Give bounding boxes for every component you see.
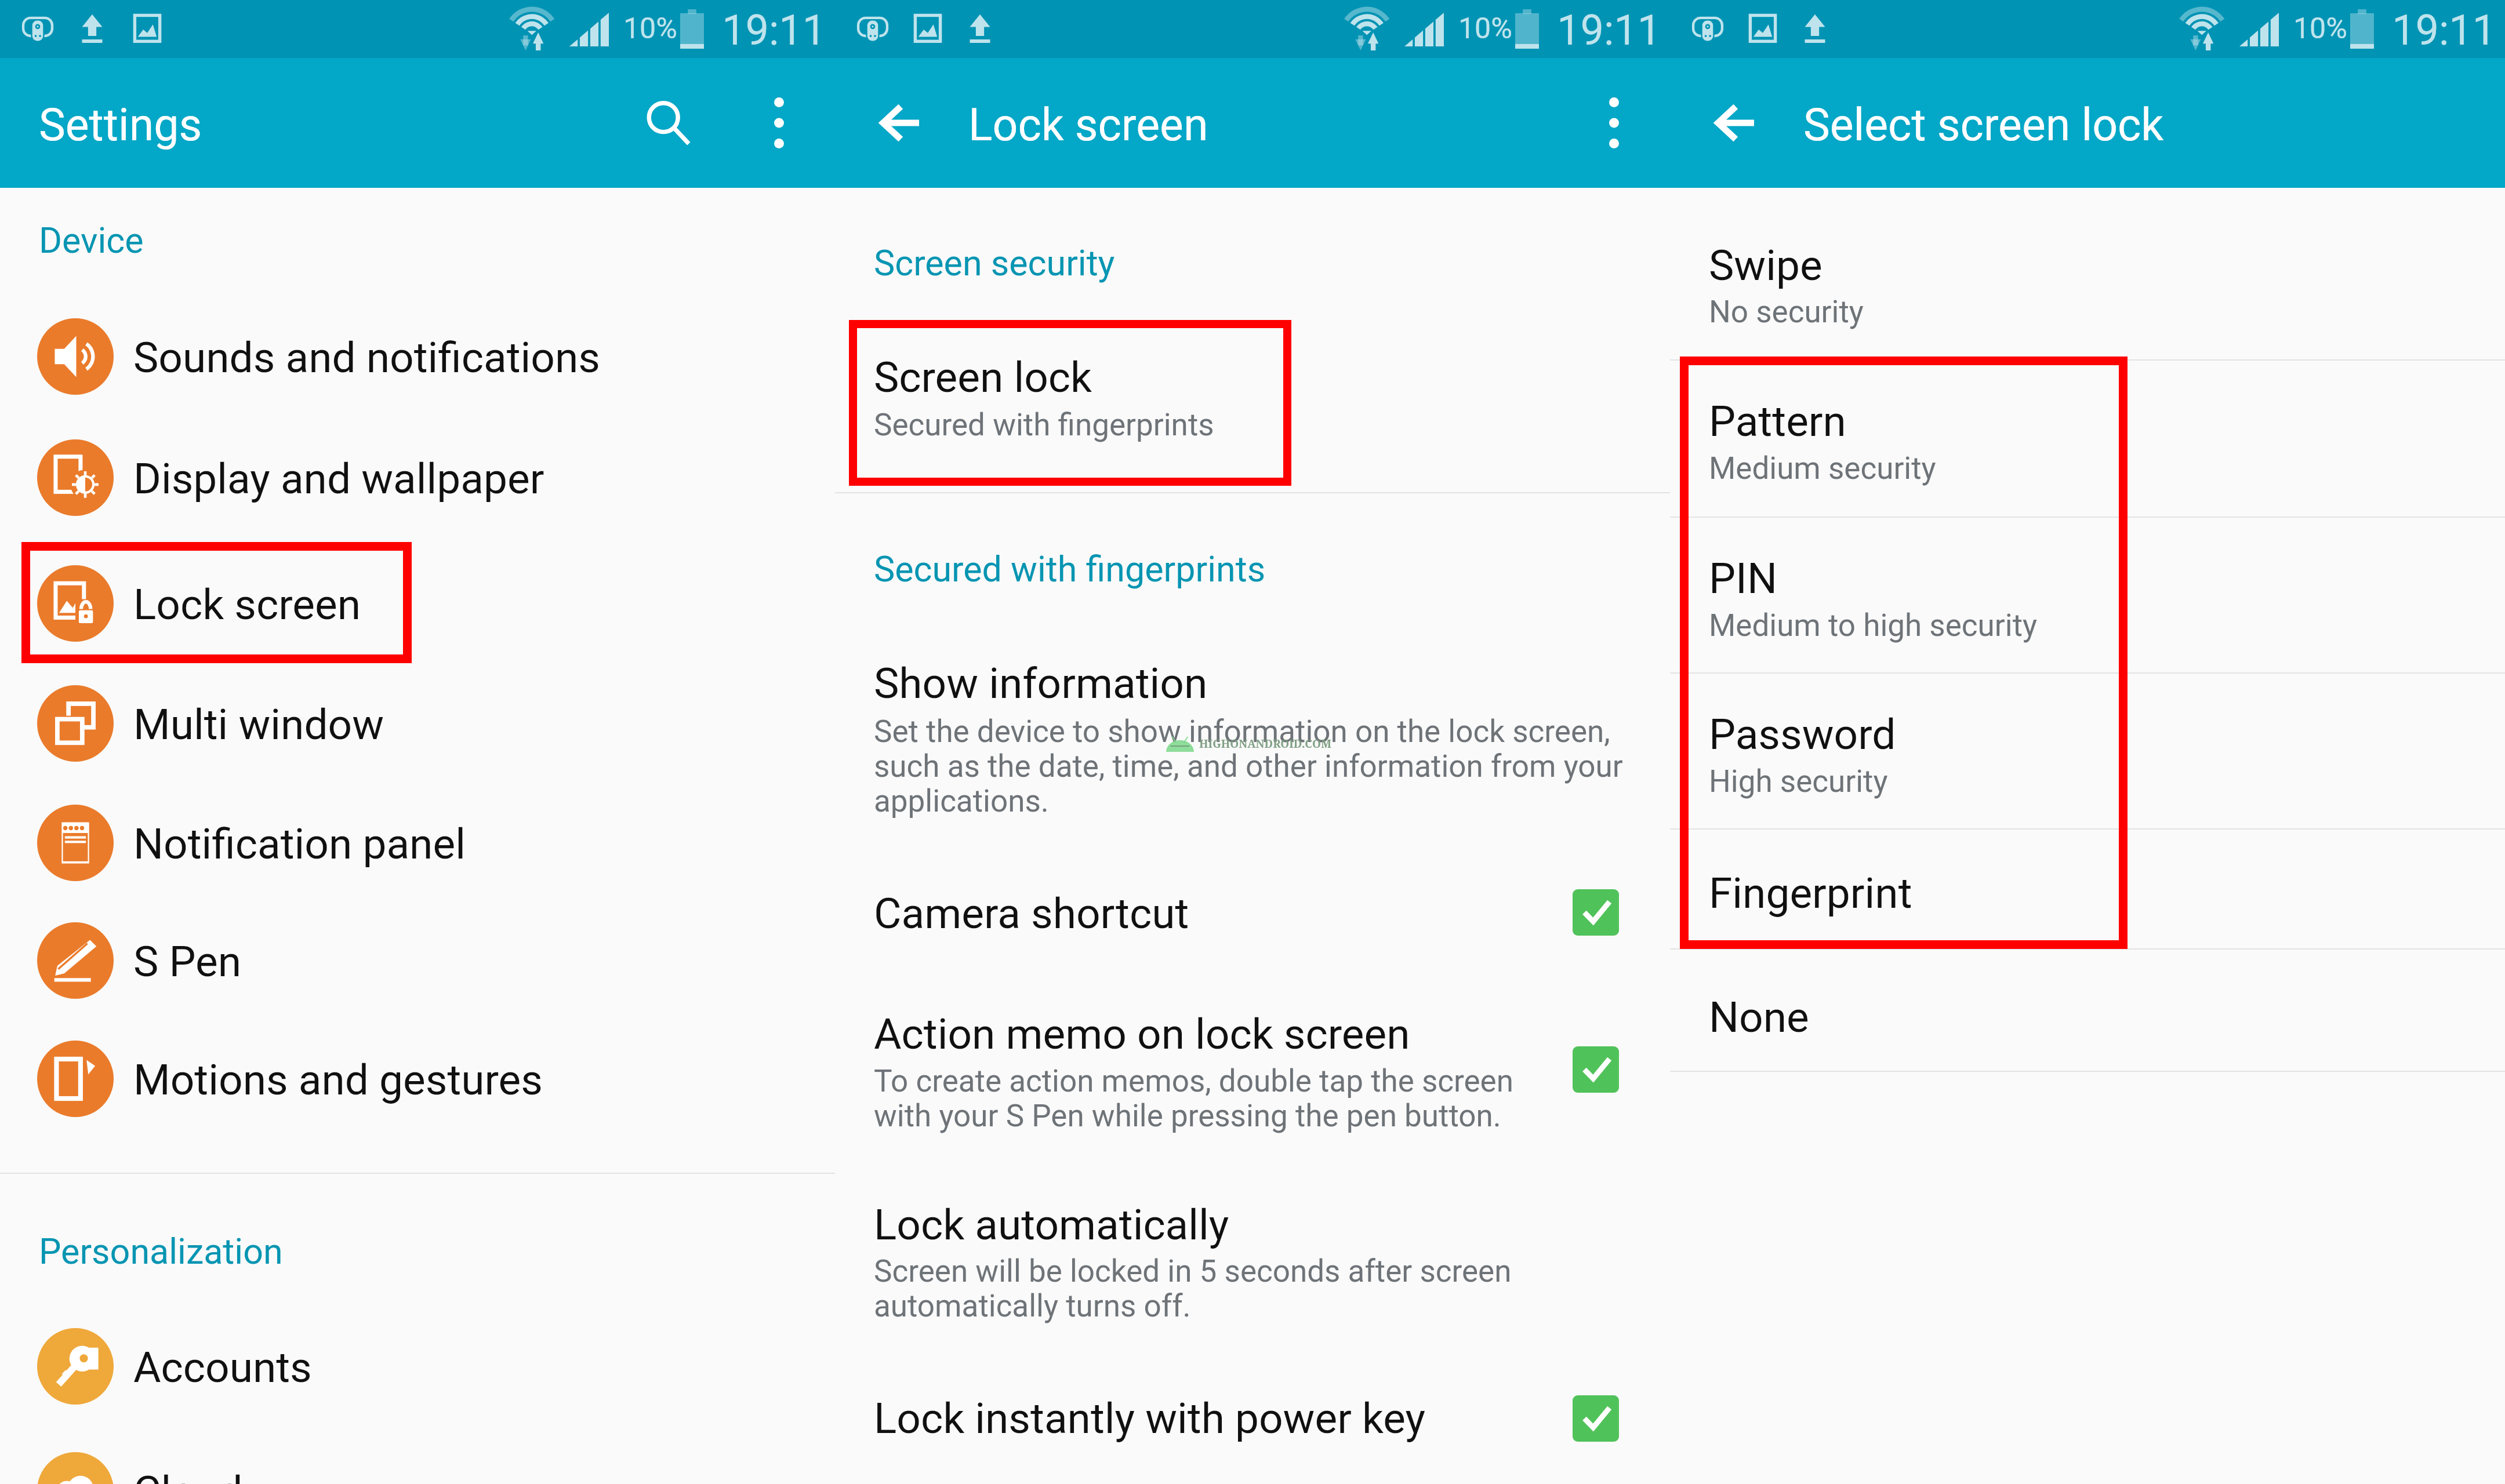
staticText: Motions and gestures <box>133 1055 543 1105</box>
staticText: Lock screen <box>968 99 1208 151</box>
staticText: Settings <box>39 99 202 151</box>
staticText: Fingerprint <box>1709 868 1912 918</box>
button[interactable]: Fingerprint <box>1670 828 2505 948</box>
button[interactable]: Lock screen <box>0 543 835 664</box>
staticText: No security <box>1709 294 1864 330</box>
button[interactable]: Camera shortcut <box>835 852 1670 968</box>
staticText: Swipe <box>1709 241 1823 290</box>
staticText: Display and wallpaper <box>133 454 544 504</box>
button[interactable]: Cloud <box>0 1430 835 1484</box>
staticText: Personalization <box>39 1231 283 1272</box>
staticText: automatically turns off. <box>874 1288 1191 1324</box>
button[interactable]: Navigate up <box>854 58 946 188</box>
button[interactable]: Swipe <box>1670 188 2505 359</box>
staticText: Camera shortcut <box>874 889 1189 939</box>
button[interactable]: Toggle <box>1573 889 1619 936</box>
staticText: Sounds and notifications <box>133 333 600 383</box>
staticText: applications. <box>874 783 1049 819</box>
staticText: with your S Pen while pressing the pen b… <box>874 1098 1501 1134</box>
staticText: Password <box>1709 710 1896 759</box>
button[interactable]: Motions and gestures <box>0 1019 835 1139</box>
staticText: Cloud <box>133 1467 243 1484</box>
staticText: 19:11 <box>1557 6 1661 54</box>
button[interactable]: Notification panel <box>0 783 835 903</box>
staticText: Multi window <box>133 700 384 750</box>
button[interactable]: Search <box>624 58 712 188</box>
staticText: Set the device to show information on th… <box>874 714 1610 750</box>
button[interactable]: Toggle <box>1573 1046 1619 1093</box>
staticText: 10% <box>1458 12 1512 46</box>
staticText: Notification panel <box>133 819 466 869</box>
staticText: Medium to high security <box>1709 608 2038 643</box>
staticText: None <box>1709 992 1809 1042</box>
button[interactable]: Display and wallpaper <box>0 417 835 538</box>
staticText: Device <box>39 220 144 261</box>
staticText: Accounts <box>133 1343 312 1392</box>
staticText: Screen lock <box>874 352 1092 402</box>
staticText: Screen will be locked in 5 seconds after… <box>874 1253 1512 1289</box>
button[interactable]: None <box>1670 948 2505 1071</box>
staticText: 19:11 <box>722 6 826 54</box>
button[interactable]: PIN <box>1670 517 2505 672</box>
staticText: 10% <box>623 12 677 46</box>
button[interactable]: S Pen <box>0 900 835 1021</box>
button[interactable]: Navigate up <box>1689 58 1781 188</box>
staticText: 19:11 <box>2392 6 2496 54</box>
staticText: To create action memos, double tap the s… <box>874 1063 1513 1099</box>
button[interactable]: Multi window <box>0 663 835 784</box>
staticText: PIN <box>1709 554 1777 603</box>
button[interactable]: Password <box>1670 672 2505 828</box>
button[interactable]: Sounds and notifications <box>0 296 835 417</box>
staticText: Secured with fingerprints <box>874 548 1266 590</box>
button[interactable]: Lock instantly with power key <box>835 1362 1670 1478</box>
staticText: such as the date, time, and other inform… <box>874 748 1623 784</box>
button[interactable]: Toggle <box>1573 1395 1619 1442</box>
staticText: Secured with fingerprints <box>874 407 1214 443</box>
staticText: Lock screen <box>133 580 361 630</box>
staticText: S Pen <box>133 937 242 987</box>
staticText: High security <box>1709 763 1888 799</box>
staticText: Lock instantly with power key <box>874 1394 1426 1443</box>
button[interactable]: Accounts <box>0 1306 835 1427</box>
staticText: Screen security <box>874 242 1115 283</box>
staticText: Lock automatically <box>874 1200 1229 1250</box>
button[interactable]: Pattern <box>1670 359 2505 517</box>
staticText: Show information <box>874 659 1208 708</box>
staticText: Pattern <box>1709 397 1846 446</box>
button[interactable]: Lock automatically <box>835 1177 1670 1345</box>
staticText: 10% <box>2293 12 2347 46</box>
staticText: Select screen lock <box>1803 99 2164 151</box>
staticText: HIGHONANDROID.COM <box>1199 736 1332 751</box>
staticText: Action memo on lock screen <box>874 1009 1410 1059</box>
button[interactable]: Show information <box>835 632 1670 829</box>
button[interactable]: Screen lock <box>835 321 1670 485</box>
button[interactable]: Action memo on lock screen <box>835 985 1670 1148</box>
staticText: Medium security <box>1709 450 1936 486</box>
button[interactable]: More options <box>735 58 822 188</box>
button[interactable]: More options <box>1570 58 1657 188</box>
